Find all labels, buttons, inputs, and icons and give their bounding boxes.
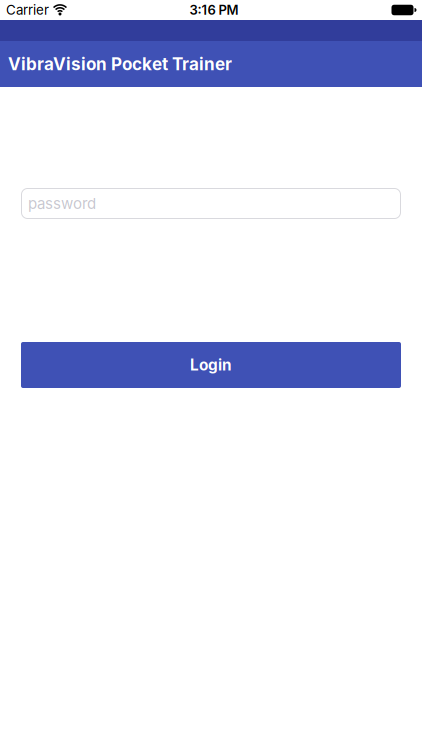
button[interactable]: Login: [21, 342, 401, 388]
staticText: Carrier: [6, 2, 49, 18]
staticText: [21, 194, 26, 213]
textField[interactable]: [21, 194, 401, 213]
staticText: Login: [190, 356, 232, 374]
staticText: password: [28, 194, 96, 213]
staticText: VibraVision Pocket Trainer: [8, 54, 232, 74]
staticText: 3:16 PM: [189, 2, 238, 18]
